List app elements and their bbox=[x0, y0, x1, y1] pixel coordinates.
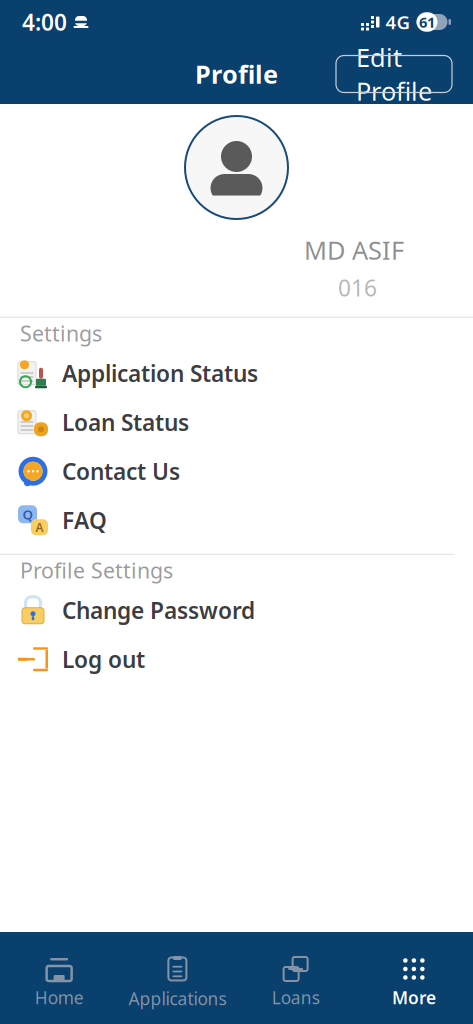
button[interactable]: Edit Profile bbox=[336, 55, 452, 92]
staticText: Settings bbox=[20, 319, 102, 347]
button[interactable]: Loans bbox=[236, 947, 355, 1009]
staticText: Loan Status bbox=[62, 407, 189, 437]
button[interactable]: Home bbox=[0, 947, 118, 1009]
button[interactable]: Contact Us bbox=[0, 447, 473, 496]
staticText: MD ASIF bbox=[304, 233, 404, 267]
button[interactable]: Log out bbox=[0, 635, 473, 684]
staticText: Contact Us bbox=[62, 456, 180, 486]
staticText: 4G bbox=[385, 10, 410, 34]
staticText: Log out bbox=[62, 644, 145, 674]
staticText: 61 bbox=[419, 12, 435, 32]
staticText: Q bbox=[22, 505, 32, 523]
staticText: Edit Profile bbox=[356, 40, 432, 108]
staticText: Application Status bbox=[62, 358, 258, 388]
staticText: More bbox=[392, 986, 436, 1009]
staticText: Profile Settings bbox=[20, 556, 173, 584]
staticText: FAQ bbox=[62, 505, 107, 535]
staticText: 4:00 bbox=[22, 7, 67, 37]
button[interactable]: Loan Status bbox=[0, 398, 473, 447]
staticText: 016 bbox=[338, 273, 377, 303]
button[interactable]: More bbox=[355, 947, 473, 1009]
button[interactable]: Change Password bbox=[0, 586, 473, 635]
staticText: Loans bbox=[272, 986, 320, 1009]
button[interactable]: Applications bbox=[118, 946, 236, 1010]
staticText: Profile bbox=[195, 57, 278, 91]
button[interactable]: Application Status bbox=[0, 349, 473, 398]
staticText: Change Password bbox=[62, 595, 255, 625]
staticText: Home bbox=[35, 986, 84, 1009]
staticText: A bbox=[35, 519, 43, 535]
button[interactable]: Q bbox=[0, 496, 473, 545]
staticText: Applications bbox=[128, 987, 226, 1010]
